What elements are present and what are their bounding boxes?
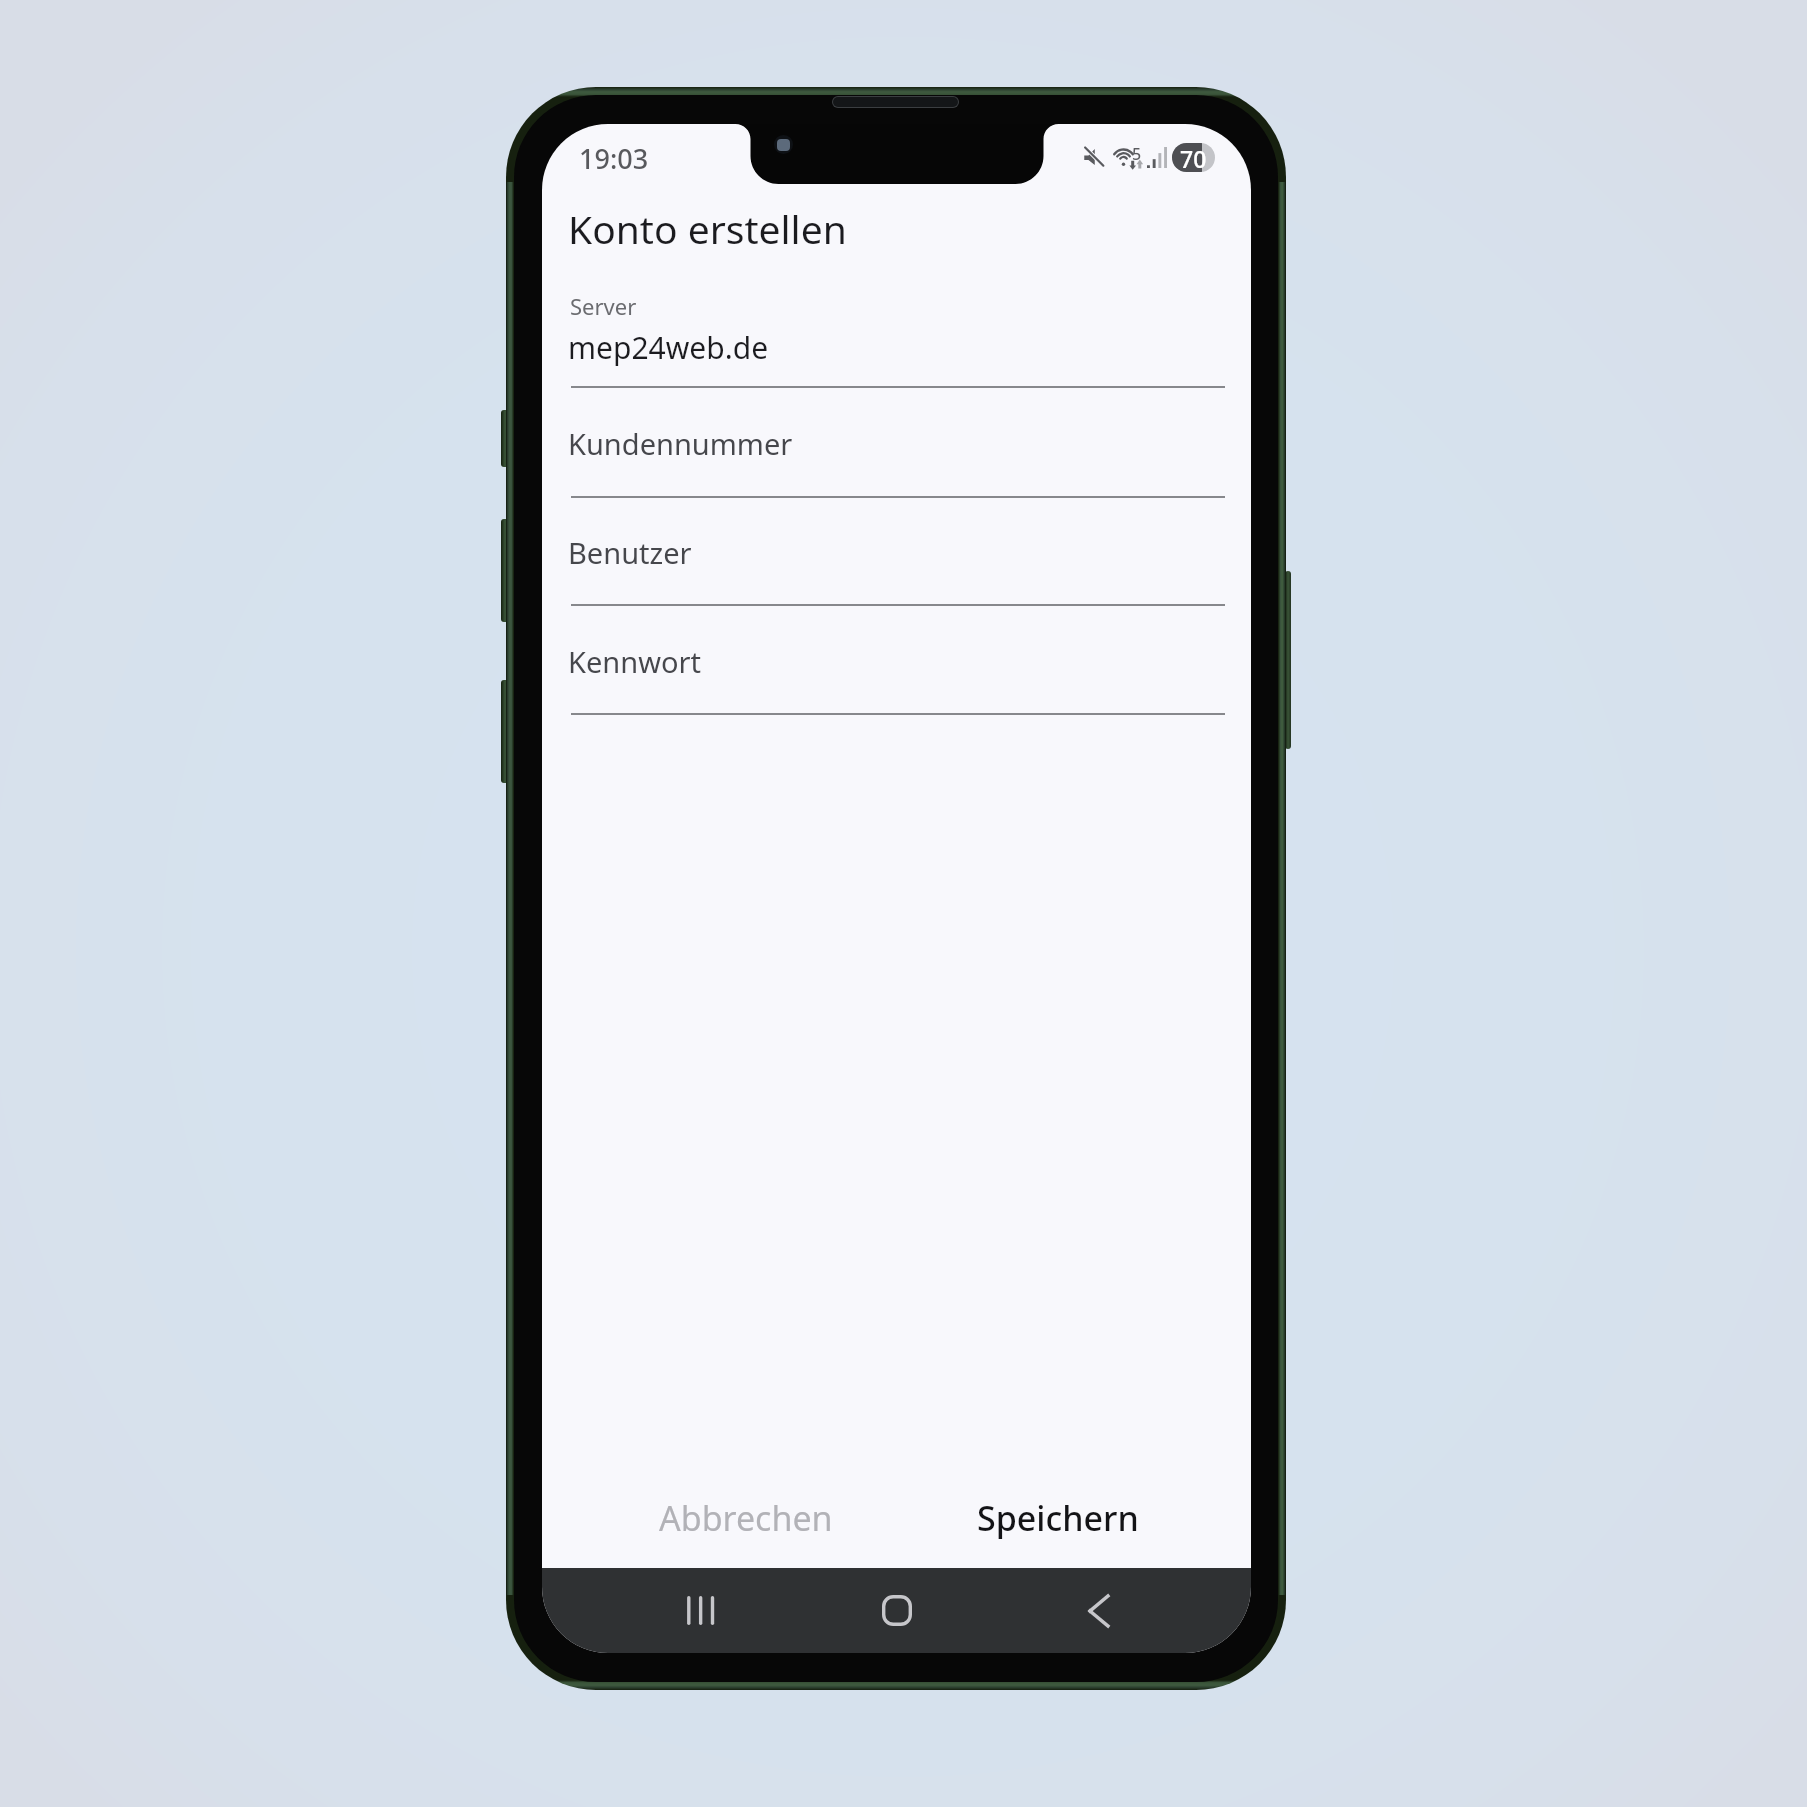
button[interactable]: Home bbox=[837, 1568, 957, 1653]
staticText: Kennwort bbox=[568, 642, 701, 681]
staticText: Speichern bbox=[977, 1495, 1139, 1541]
staticText: 19:03 bbox=[579, 140, 649, 177]
button[interactable]: Speichern bbox=[918, 1479, 1198, 1557]
button[interactable]: Recent apps bbox=[629, 1568, 749, 1653]
staticText: mep24web.de bbox=[568, 327, 769, 368]
button[interactable]: Abbrechen bbox=[606, 1479, 886, 1557]
staticText: Kundennummer bbox=[568, 424, 793, 463]
button[interactable] bbox=[571, 386, 1225, 496]
staticText: Server bbox=[570, 291, 637, 321]
button[interactable] bbox=[571, 330, 1225, 386]
staticText: 70 bbox=[1180, 143, 1207, 172]
button[interactable] bbox=[571, 496, 1225, 605]
staticText: Abbrechen bbox=[659, 1495, 833, 1541]
button[interactable]: Back bbox=[1044, 1568, 1164, 1653]
staticText: 5 bbox=[1132, 143, 1142, 165]
staticText: Benutzer bbox=[568, 533, 692, 572]
staticText: Konto erstellen bbox=[568, 202, 847, 255]
button[interactable] bbox=[571, 604, 1225, 713]
